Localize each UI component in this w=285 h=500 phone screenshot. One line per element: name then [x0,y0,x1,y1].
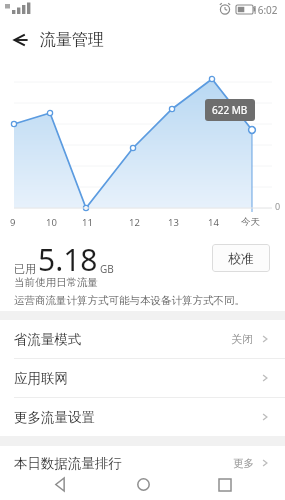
button[interactable]: 最近任务 [203,469,247,500]
button[interactable]: 返回 [0,20,40,60]
staticText: 应用联网 [14,370,68,387]
staticText: 流量管理 [40,30,104,50]
staticText: 更多流量设置 [14,409,95,426]
staticText: 16:02 [252,3,278,17]
staticText: 省流量模式 [14,331,82,348]
button[interactable]: 校准 [212,244,270,272]
staticText: 本日数据流量排行 [14,455,122,472]
staticText: 5.18 [38,239,98,280]
staticText: 622 MB [212,103,248,117]
button[interactable]: 主屏幕 [121,469,165,500]
staticText: 13 [168,216,179,229]
button[interactable]: 省流量模式 [0,320,285,358]
staticText: 0 [275,200,281,212]
staticText: 校准 [228,250,254,266]
button[interactable]: 本日数据流量排行 [0,446,285,480]
button[interactable]: 应用联网 [0,359,285,397]
staticText: 10 [46,216,57,229]
staticText: 11 [82,216,93,229]
staticText: 已用 [14,262,36,276]
staticText: 12 [129,216,140,229]
staticText: 关闭 [231,332,253,346]
button[interactable]: 返回 [38,469,82,500]
staticText: 9 [10,216,16,229]
staticText: 更多 [233,457,254,470]
staticText: 今天 [241,216,260,228]
staticText: GB [100,262,114,276]
staticText: 当前使用日常流量 [14,276,98,289]
staticText: 14 [208,216,219,229]
button[interactable]: 更多流量设置 [0,398,285,436]
staticText: 运营商流量计算方式可能与本设备计算方式不同。 [14,294,245,307]
